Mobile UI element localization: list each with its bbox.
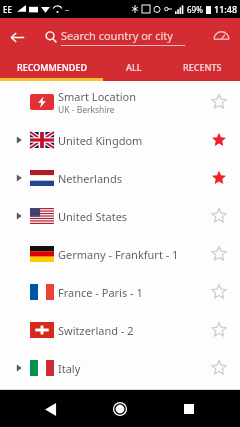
button[interactable]: Add favourite [208,281,230,303]
button[interactable]: Remove favourite [208,129,230,151]
button[interactable]: Add favourite [208,243,230,265]
button[interactable]: Add favourite [208,357,230,379]
staticText: Italy [58,361,81,376]
button[interactable]: Recents [171,391,207,427]
staticText: France - Paris - 1 [58,285,143,300]
staticText: ALL [126,61,142,73]
button[interactable]: Remove favourite [208,167,230,189]
staticText: RECENTS [183,61,222,73]
staticText: UK - Berkshire [58,104,115,116]
button[interactable]: Germany - Frankfurt - 1 [0,235,240,273]
staticText: EE [3,4,12,15]
staticText: Smart Location [58,89,137,104]
button[interactable]: Add favourite [208,205,230,227]
button[interactable]: Switzerland - 2 [0,311,240,349]
staticText: United States [58,209,128,224]
button[interactable]: Smart Location [0,83,240,121]
button[interactable]: Search country or city [45,28,190,46]
staticText: United Kingdom [58,133,143,148]
button[interactable]: United States [0,197,240,235]
staticText: Search country or city [61,28,173,43]
button[interactable]: Italy [0,349,240,387]
button[interactable]: Speed test [206,22,236,52]
staticText: Switzerland - 2 [58,323,134,338]
button[interactable]: Add favourite [208,91,230,113]
staticText: 11:48 [214,3,238,15]
button[interactable]: France - Paris - 1 [0,273,240,311]
staticText: RECOMMENDED [17,61,87,73]
button[interactable]: Netherlands [0,159,240,197]
button[interactable]: ALL [103,56,165,78]
button[interactable]: United Kingdom [0,121,240,159]
button[interactable]: Back [0,20,34,54]
button[interactable]: Back [33,391,69,427]
staticText: 69% [187,4,203,15]
staticText: .. [65,4,69,14]
button[interactable]: RECOMMENDED [0,56,103,78]
button[interactable]: RECENTS [165,56,240,78]
staticText: Netherlands [58,171,122,186]
button[interactable]: Add favourite [208,319,230,341]
staticText: Germany - Frankfurt - 1 [58,247,179,262]
button[interactable]: Home [102,391,138,427]
